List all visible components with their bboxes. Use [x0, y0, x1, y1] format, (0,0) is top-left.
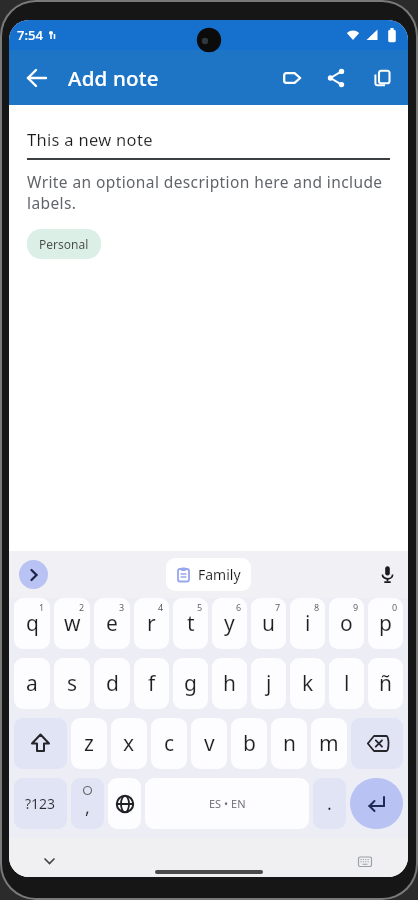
button[interactable] [350, 778, 403, 829]
staticText: s [67, 669, 78, 698]
button[interactable]: ñ [368, 658, 403, 709]
button[interactable]: y [212, 598, 247, 649]
staticText: Write an optional description here and i… [27, 171, 383, 214]
button[interactable] [353, 850, 377, 874]
staticText: 1 [39, 601, 45, 613]
staticText: Family [198, 565, 241, 584]
staticText: l [344, 669, 350, 698]
button[interactable]: Family [166, 558, 251, 591]
button[interactable] [270, 56, 314, 100]
staticText: v [204, 729, 215, 758]
button[interactable] [108, 778, 141, 829]
staticText: a [26, 669, 38, 698]
button[interactable] [14, 718, 67, 769]
button[interactable]: ES • EN [145, 778, 309, 829]
staticText: 4 [158, 601, 164, 613]
staticText: Personal [39, 236, 89, 252]
staticText: 8 [314, 601, 320, 613]
staticText: c [164, 729, 175, 758]
button[interactable]: h [212, 658, 247, 709]
staticText: ?123 [25, 794, 56, 813]
button[interactable]: z [71, 718, 107, 769]
staticText: 5 [197, 601, 203, 613]
staticText: o [340, 609, 353, 638]
button[interactable]: t [173, 598, 208, 649]
staticText: . [327, 791, 332, 816]
staticText: h [223, 669, 236, 698]
staticText: 9 [353, 601, 359, 613]
button[interactable]: c [151, 718, 187, 769]
button[interactable]: w [54, 598, 90, 649]
staticText: 7:54 [17, 26, 43, 44]
staticText: j [266, 669, 272, 698]
button[interactable]: d [94, 658, 130, 709]
staticText: 0 [392, 601, 398, 613]
staticText: p [379, 609, 392, 638]
staticText: , [85, 795, 90, 820]
staticText: b [243, 729, 256, 758]
button[interactable]: k [290, 658, 325, 709]
staticText: ñ [379, 669, 392, 698]
staticText: 6 [236, 601, 242, 613]
staticText: k [302, 669, 314, 698]
staticText: 3 [119, 601, 125, 613]
button[interactable]: r [134, 598, 169, 649]
staticText: d [106, 669, 119, 698]
staticText: r [147, 609, 156, 638]
button[interactable] [19, 560, 48, 589]
button[interactable]: Personal [27, 229, 101, 259]
staticText: q [26, 609, 39, 638]
button[interactable] [314, 56, 358, 100]
button[interactable]: n [271, 718, 307, 769]
staticText: i [305, 609, 311, 638]
staticText: 7 [275, 601, 281, 613]
button[interactable]: f [134, 658, 169, 709]
button[interactable]: x [111, 718, 147, 769]
staticText: 2 [79, 601, 85, 613]
staticText: ES • EN [209, 796, 246, 811]
staticText: u [262, 609, 275, 638]
staticText: n [283, 729, 296, 758]
button[interactable]: e [94, 598, 130, 649]
button[interactable]: i [290, 598, 325, 649]
button[interactable] [351, 718, 403, 769]
button[interactable]: g [173, 658, 208, 709]
staticText: x [123, 729, 135, 758]
button[interactable]: v [191, 718, 227, 769]
button[interactable]: b [231, 718, 267, 769]
button[interactable]: , [71, 778, 104, 829]
button[interactable]: . [313, 778, 346, 829]
staticText: Add note [68, 64, 159, 92]
button[interactable]: a [14, 658, 50, 709]
button[interactable] [358, 54, 406, 102]
staticText: w [64, 609, 81, 638]
staticText: f [148, 669, 156, 698]
staticText: This a new note [27, 128, 153, 150]
staticText: m [319, 729, 339, 758]
button[interactable]: s [54, 658, 90, 709]
button[interactable]: m [311, 718, 347, 769]
button[interactable]: p [368, 598, 403, 649]
staticText: t [187, 609, 195, 638]
staticText: y [224, 609, 235, 638]
button[interactable]: l [329, 658, 364, 709]
staticText: z [84, 729, 94, 758]
button[interactable]: u [251, 598, 286, 649]
button[interactable] [9, 50, 64, 105]
staticText: g [184, 669, 197, 698]
button[interactable] [37, 849, 61, 873]
button[interactable]: j [251, 658, 286, 709]
button[interactable]: o [329, 598, 364, 649]
staticText: e [106, 609, 118, 638]
button[interactable] [373, 560, 402, 589]
button[interactable]: ?123 [14, 778, 67, 829]
button[interactable]: q [14, 598, 50, 649]
